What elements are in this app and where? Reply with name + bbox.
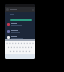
button[interactable] xyxy=(5,36,35,39)
button[interactable]: Profile xyxy=(6,8,9,11)
button[interactable]: Profile xyxy=(5,7,35,12)
button[interactable] xyxy=(5,29,35,34)
button[interactable] xyxy=(5,22,35,27)
